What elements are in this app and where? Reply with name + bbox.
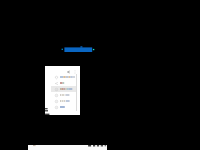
button[interactable]: Brand logo (60, 44, 96, 54)
button[interactable] (51, 86, 77, 92)
button[interactable]: Taskbar (28, 145, 107, 150)
button[interactable] (51, 104, 77, 110)
button[interactable] (51, 92, 77, 98)
button[interactable] (51, 98, 77, 104)
button[interactable] (51, 80, 77, 86)
button[interactable]: Mute site (66, 69, 72, 75)
button[interactable]: More options (72, 69, 78, 75)
button[interactable] (51, 74, 77, 80)
